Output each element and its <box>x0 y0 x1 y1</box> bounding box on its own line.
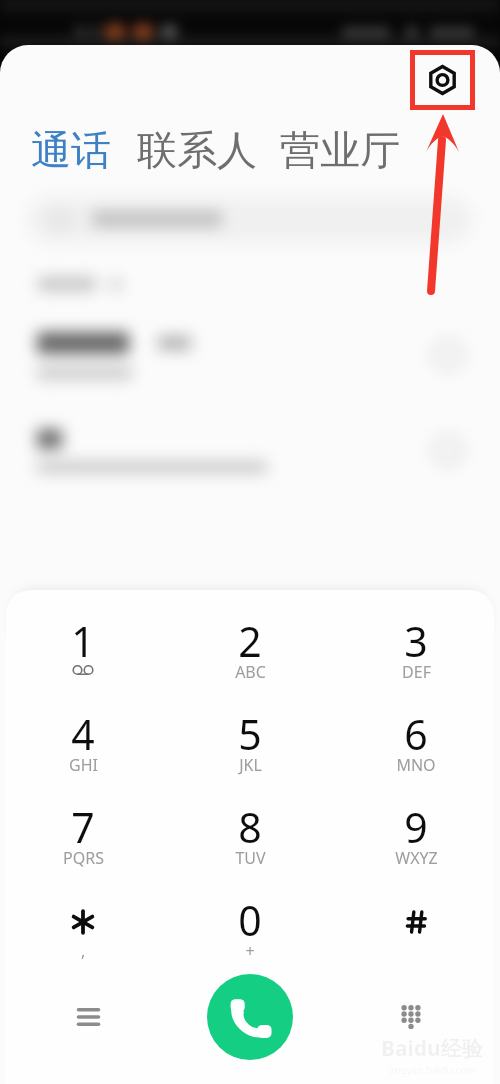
button[interactable] <box>361 891 471 979</box>
staticText: PQRS <box>63 847 104 869</box>
button[interactable]: 0 <box>195 891 305 979</box>
button[interactable]: Call <box>207 974 293 1060</box>
staticText: Baidu经验 <box>381 1034 483 1063</box>
button[interactable]: Call log entry 1 <box>0 320 500 398</box>
staticText: 6 <box>404 706 428 762</box>
button[interactable]: 1 <box>28 612 138 700</box>
staticText: , <box>81 940 86 962</box>
staticText: DEF <box>402 661 431 683</box>
button[interactable]: 3 <box>361 612 471 700</box>
staticText: 0 <box>238 892 262 948</box>
button[interactable]: 7 <box>28 798 138 886</box>
button[interactable]: 联系人 <box>137 125 257 175</box>
staticText: ABC <box>235 661 266 683</box>
staticText: 2 <box>238 613 262 669</box>
staticText: 3 <box>404 613 428 669</box>
staticText: JKL <box>239 754 262 776</box>
staticText: 5 <box>238 706 262 762</box>
button[interactable]: 5 <box>195 705 305 793</box>
staticText: 1 <box>71 613 95 669</box>
button[interactable]: 通话 <box>31 125 111 175</box>
staticText: 4 <box>71 706 95 762</box>
staticText: 8 <box>238 799 262 855</box>
button[interactable]: Dialpad <box>380 981 452 1053</box>
button[interactable]: Search contacts <box>28 197 472 243</box>
button[interactable]: , <box>28 891 138 979</box>
button[interactable]: Menu <box>47 981 119 1053</box>
staticText: TUV <box>235 847 266 869</box>
button[interactable]: 8 <box>195 798 305 886</box>
button[interactable]: 4 <box>28 705 138 793</box>
staticText: 7 <box>71 799 95 855</box>
staticText: 9 <box>404 799 428 855</box>
button[interactable]: Settings <box>410 50 475 110</box>
staticText: MNO <box>396 754 436 776</box>
staticText: GHI <box>69 754 98 776</box>
staticText: WXYZ <box>395 847 438 869</box>
button[interactable]: 营业厅 <box>280 125 400 175</box>
button[interactable]: 6 <box>361 705 471 793</box>
button[interactable]: 9 <box>361 798 471 886</box>
button[interactable]: 2 <box>195 612 305 700</box>
button[interactable]: Call log entry 2 <box>0 418 500 496</box>
staticText: + <box>245 940 255 962</box>
